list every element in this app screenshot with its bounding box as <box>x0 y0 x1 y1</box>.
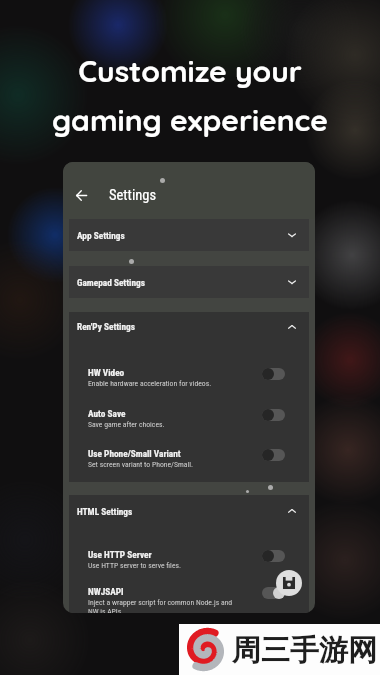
staticText: Ren'Py Settings <box>77 321 135 332</box>
staticText: App Settings <box>77 230 125 241</box>
staticText: Use HTTP Server <box>88 549 152 560</box>
button[interactable]: Gamepad Settings <box>69 266 309 298</box>
staticText: Auto Save <box>88 408 126 419</box>
button[interactable]: HTML Settings <box>69 495 309 527</box>
staticText: NW.js APIs <box>88 607 122 613</box>
staticText: Gamepad Settings <box>77 277 145 288</box>
staticText: 周三手游网 <box>232 632 377 669</box>
staticText: Customize your <box>78 52 302 90</box>
button[interactable]: NWJSAPI <box>69 586 309 613</box>
staticText: NWJSAPI <box>88 586 124 597</box>
button[interactable]: Auto Save <box>69 408 309 429</box>
button[interactable]: Use HTTP Server <box>69 549 309 570</box>
staticText: Use Phone/Small Variant <box>88 448 181 459</box>
staticText: HW Video <box>88 367 125 378</box>
button[interactable]: Ren'Py Settings <box>69 312 309 341</box>
staticText: Enable hardware acceleration for videos. <box>88 379 212 388</box>
staticText: Settings <box>109 187 157 204</box>
staticText: gaming experience <box>52 101 328 139</box>
staticText: Save game after choices. <box>88 420 165 429</box>
staticText: Use HTTP server to serve files. <box>88 561 182 570</box>
staticText: Set screen variant to Phone/Small. <box>88 460 193 469</box>
button[interactable]: Back <box>71 185 91 205</box>
staticText: HTML Settings <box>77 506 133 517</box>
button[interactable]: App Settings <box>69 219 309 251</box>
button[interactable]: Use Phone/Small Variant <box>69 448 309 469</box>
button[interactable]: Save <box>276 570 302 596</box>
staticText: Inject a wrapper script for common Node.… <box>88 598 233 607</box>
button[interactable]: HW Video <box>69 367 309 388</box>
